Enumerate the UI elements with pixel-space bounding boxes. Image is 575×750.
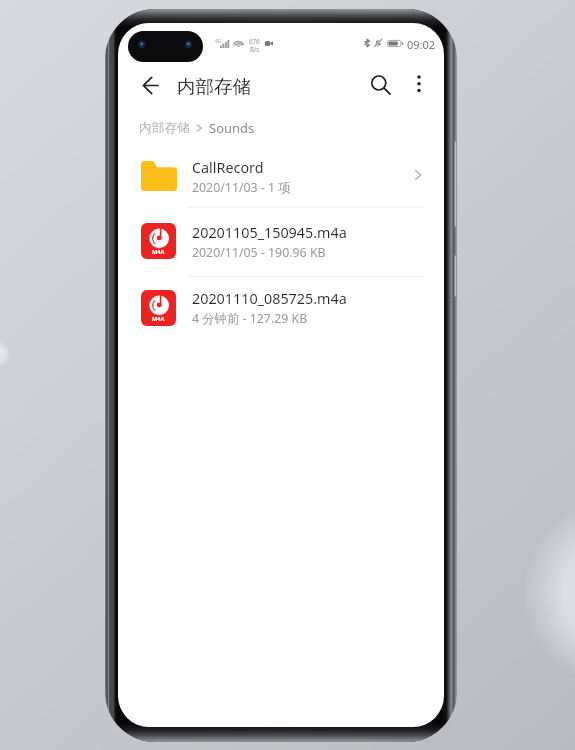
staticText: 2020/11/05 - 190.96 KB: [192, 244, 326, 261]
staticText: B/s: [250, 45, 260, 53]
staticText: 20201105_150945.m4a: [192, 223, 347, 243]
button[interactable]: Back: [126, 65, 174, 105]
staticText: Sounds: [209, 119, 255, 137]
staticText: CallRecord: [192, 158, 264, 178]
button[interactable]: Search: [358, 65, 402, 105]
staticText: 676: [249, 37, 260, 45]
staticText: M4A: [152, 315, 165, 323]
button[interactable]: More options: [402, 65, 436, 105]
staticText: 4 分钟前 - 127.29 KB: [192, 310, 308, 327]
staticText: 内部存储: [177, 75, 251, 98]
staticText: 2020/11/03 - 1 项: [192, 179, 291, 196]
staticText: M4A: [152, 248, 165, 256]
staticText: 09:02: [407, 37, 436, 52]
staticText: 内部存储: [139, 120, 190, 136]
button[interactable]: CallRecord: [118, 143, 444, 207]
staticText: 4G: [215, 38, 222, 45]
button[interactable]: M4A: [118, 211, 444, 275]
staticText: 20201110_085725.m4a: [192, 289, 347, 309]
button[interactable]: M4A: [118, 277, 444, 341]
